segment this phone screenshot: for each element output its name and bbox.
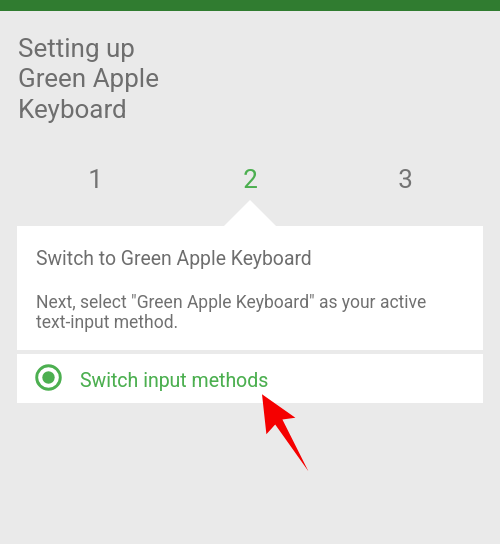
staticText: Keyboard	[18, 94, 127, 124]
staticText: 3	[398, 164, 413, 192]
button[interactable]: 2	[173, 164, 328, 192]
staticText: 1	[88, 164, 103, 192]
button[interactable]: 3	[328, 164, 483, 192]
staticText: Setting up	[18, 33, 135, 63]
button[interactable]: Switch input methods, selected	[17, 354, 483, 403]
other: Switch input methods, selected	[35, 364, 62, 391]
button[interactable]: 1	[17, 164, 173, 192]
staticText: Switch to Green Apple Keyboard	[36, 247, 312, 270]
staticText: Next, select "Green Apple Keyboard" as y…	[36, 292, 427, 332]
staticText: Green Apple	[18, 63, 159, 93]
staticText: 2	[243, 164, 258, 192]
staticText: Switch input methods	[80, 369, 269, 392]
